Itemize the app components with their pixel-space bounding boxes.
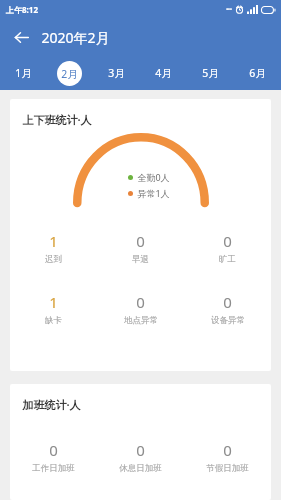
button[interactable]: 1 [10, 231, 97, 265]
staticText: 1 [49, 292, 58, 312]
staticText: 地点异常 [124, 315, 158, 326]
staticText: 迟到 [45, 254, 62, 265]
staticText: 0 [223, 292, 232, 312]
button[interactable]: 3月 [93, 56, 140, 90]
staticText: 休息日加班 [119, 463, 162, 474]
staticText: 0 [136, 292, 145, 312]
staticText: 6月 [249, 66, 266, 80]
staticText: 3月 [108, 66, 125, 80]
staticText: 节假日加班 [206, 463, 249, 474]
button[interactable]: 6月 [234, 56, 281, 90]
staticText: 2月 [61, 67, 78, 81]
button[interactable]: 0 [97, 231, 184, 265]
button[interactable]: 加班统计·人 [10, 384, 271, 500]
staticText: 全勤0人 [137, 171, 170, 183]
button[interactable]: 5月 [187, 56, 234, 90]
staticText: 设备异常 [211, 315, 245, 326]
staticText: 早退 [132, 254, 149, 265]
staticText: 1 [49, 231, 58, 251]
staticText: 0 [223, 440, 232, 460]
staticText: 加班统计·人 [22, 397, 81, 412]
staticText: 上下班统计·人 [22, 112, 92, 127]
button[interactable]: 0 [184, 292, 271, 326]
staticText: 旷工 [219, 254, 236, 265]
button[interactable]: 1 [10, 292, 97, 326]
button[interactable]: 0 [184, 231, 271, 265]
button[interactable]: Back [8, 24, 34, 50]
staticText: 缺卡 [45, 315, 62, 326]
button[interactable]: 0 [97, 292, 184, 326]
staticText: 4月 [155, 66, 172, 80]
staticText: ••• [226, 6, 232, 13]
staticText: 1月 [15, 66, 32, 80]
button[interactable]: 0 [97, 440, 184, 474]
button[interactable]: 上下班统计·人 [10, 99, 271, 371]
staticText: 2020年2月 [41, 28, 110, 47]
button[interactable]: 0 [10, 440, 97, 474]
staticText: 0 [136, 231, 145, 251]
button[interactable]: 0 [184, 440, 271, 474]
staticText: 0 [49, 440, 58, 460]
button[interactable]: 4月 [140, 56, 187, 90]
staticText: 上午8:12 [6, 4, 38, 15]
button[interactable]: 1月 [0, 56, 46, 90]
staticText: 异常1人 [137, 187, 170, 199]
staticText: 0 [223, 231, 232, 251]
staticText: 5月 [202, 66, 219, 80]
button[interactable]: 2月 [46, 56, 93, 90]
staticText: 工作日加班 [32, 463, 75, 474]
staticText: 0 [136, 440, 145, 460]
